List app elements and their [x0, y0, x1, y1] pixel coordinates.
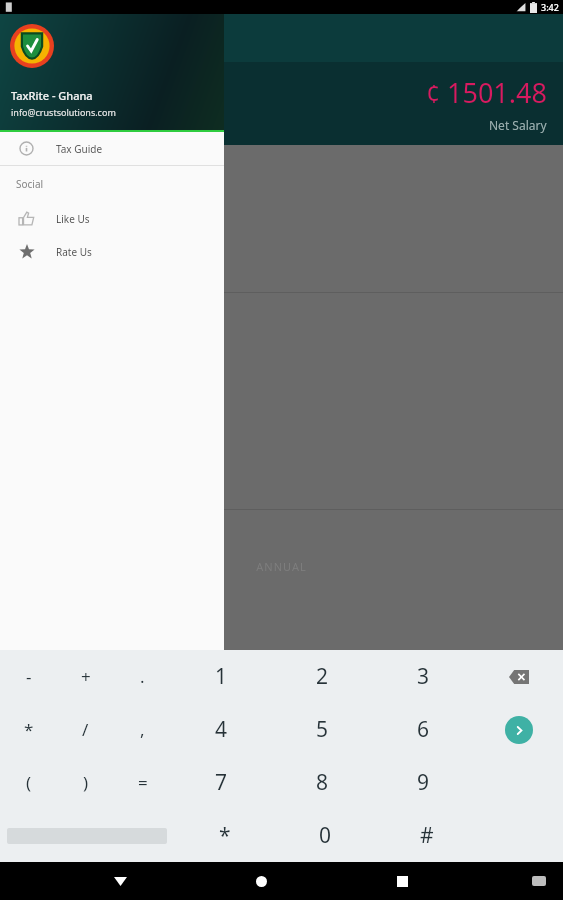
- button[interactable]: 9: [373, 756, 474, 809]
- staticText: #: [420, 821, 434, 850]
- button[interactable]: -: [0, 650, 57, 703]
- button[interactable]: ¢: [0, 372, 563, 398]
- button[interactable]: ¢: [0, 232, 563, 258]
- staticText: ¢: [57, 238, 64, 253]
- button[interactable]: ¢: [0, 520, 563, 542]
- staticText: Social: [16, 177, 44, 191]
- button[interactable]: Tax Guide: [0, 132, 224, 165]
- staticText: 7: [215, 768, 228, 797]
- button[interactable]: ¢: [0, 450, 563, 476]
- staticText: 9: [417, 768, 430, 797]
- button[interactable]: 6: [373, 703, 474, 756]
- staticText: ): [83, 771, 89, 794]
- button[interactable]: Switch keyboard: [521, 863, 557, 899]
- button[interactable]: ¢: [0, 320, 563, 346]
- staticText: 3:42: [541, 1, 559, 13]
- staticText: 8: [316, 768, 329, 797]
- staticText: /: [82, 718, 89, 741]
- staticText: 1: [215, 662, 228, 691]
- button[interactable]: ¢: [0, 346, 563, 372]
- button[interactable]: 2: [272, 650, 373, 703]
- button[interactable]: Home: [239, 862, 283, 900]
- button[interactable]: ): [57, 756, 114, 809]
- button[interactable]: *: [0, 703, 57, 756]
- button[interactable]: Like Us: [0, 202, 224, 235]
- staticText: info@crustsolutions.com: [11, 106, 116, 118]
- button[interactable]: ¢: [0, 180, 563, 206]
- button[interactable]: ¢: [0, 398, 563, 424]
- button[interactable]: =: [114, 756, 171, 809]
- button[interactable]: .: [114, 650, 171, 703]
- staticText: (: [26, 771, 32, 794]
- button[interactable]: Hide keyboard: [98, 862, 142, 900]
- button[interactable]: ¢: [0, 258, 563, 284]
- staticText: 2: [316, 662, 329, 691]
- button[interactable]: #: [376, 809, 477, 862]
- button[interactable]: Enter: [505, 716, 533, 744]
- staticText: Like Us: [56, 212, 90, 226]
- button[interactable]: Recent apps: [380, 862, 424, 900]
- button[interactable]: 1: [171, 650, 272, 703]
- button[interactable]: +: [57, 650, 114, 703]
- button[interactable]: ¢: [0, 476, 563, 502]
- button[interactable]: ,: [114, 703, 171, 756]
- button[interactable]: Space: [0, 809, 174, 862]
- staticText: .: [140, 665, 145, 688]
- staticText: Rate Us: [56, 245, 92, 259]
- staticText: =: [138, 771, 148, 794]
- button[interactable]: 4: [171, 703, 272, 756]
- button[interactable]: *: [174, 809, 275, 862]
- button[interactable]: Backspace: [498, 656, 540, 698]
- button[interactable]: 7: [171, 756, 272, 809]
- staticText: 0: [319, 821, 332, 850]
- button[interactable]: 0: [275, 809, 376, 862]
- staticText: 6: [417, 715, 430, 744]
- button[interactable]: ¢: [0, 424, 563, 450]
- staticText: ¢: [426, 76, 441, 110]
- staticText: TaxRite - Ghana: [11, 88, 93, 103]
- staticText: *: [219, 821, 231, 850]
- staticText: 4: [215, 715, 228, 744]
- button[interactable]: (: [0, 756, 57, 809]
- button[interactable]: 5: [272, 703, 373, 756]
- staticText: 5: [316, 715, 329, 744]
- staticText: *: [24, 718, 34, 741]
- staticText: Tax Guide: [56, 142, 103, 156]
- staticText: ANNUAL: [0, 559, 563, 574]
- staticText: -: [26, 665, 32, 688]
- button[interactable]: ¢: [0, 206, 563, 232]
- staticText: ¢: [57, 212, 64, 227]
- staticText: 1501.48: [447, 74, 547, 111]
- button[interactable]: Rate Us: [0, 235, 224, 268]
- staticText: 200: [75, 238, 94, 253]
- staticText: 300: [75, 212, 94, 227]
- button[interactable]: 8: [272, 756, 373, 809]
- button[interactable]: /: [57, 703, 114, 756]
- staticText: ,: [140, 718, 145, 741]
- button[interactable]: 3: [373, 650, 474, 703]
- staticText: 3: [417, 662, 430, 691]
- staticText: Net Salary: [489, 117, 547, 133]
- staticText: +: [81, 665, 91, 688]
